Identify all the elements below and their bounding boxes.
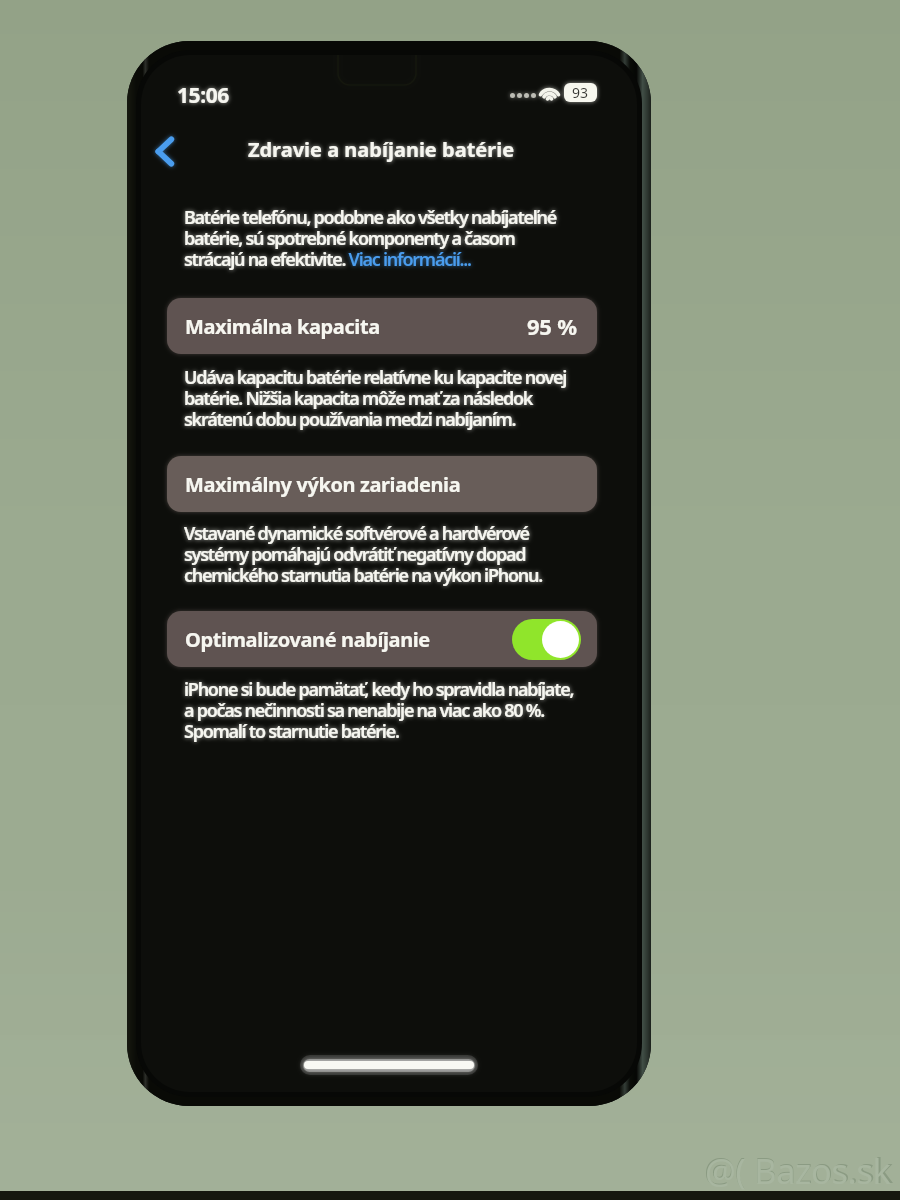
button[interactable]: Maximálna kapacita xyxy=(167,298,597,354)
staticText: 15:06 xyxy=(177,81,229,110)
staticText: iPhone si bude pamätať, kedy ho spravidl… xyxy=(184,677,574,744)
staticText: Batérie telefónu, podobne ako všetky nab… xyxy=(184,205,557,272)
staticText: 15:06 xyxy=(177,81,229,110)
button[interactable]: Back xyxy=(141,128,187,174)
staticText: Optimalizované nabíjanie xyxy=(185,626,430,653)
staticText: Maximálny výkon zariadenia xyxy=(185,471,461,498)
staticText: Udáva kapacitu batérie relatívne ku kapa… xyxy=(184,365,567,432)
staticText: Zdravie a nabíjanie batérie xyxy=(141,136,629,163)
button[interactable]: Optimalizované nabíjanie xyxy=(167,611,597,667)
staticText: Batérie telefónu, podobne ako všetky nab… xyxy=(184,205,557,272)
button[interactable]: Maximálna kapacita xyxy=(167,298,597,354)
staticText: Vstavané dynamické softvérové a hardvéro… xyxy=(184,521,542,588)
button[interactable]: Back xyxy=(141,128,187,174)
staticText: Maximálna kapacita xyxy=(185,313,380,340)
staticText: 95 % xyxy=(527,311,577,341)
staticText: 95 % xyxy=(527,311,577,341)
staticText: Zdravie a nabíjanie batérie xyxy=(141,136,629,163)
button[interactable]: Maximálny výkon zariadenia xyxy=(167,456,597,512)
staticText: 93 xyxy=(572,83,589,102)
staticText: Vstavané dynamické softvérové a hardvéro… xyxy=(184,521,542,588)
staticText: @( Bazos.sk xyxy=(704,1146,893,1194)
staticText: @( Bazos.sk xyxy=(705,1147,891,1194)
staticText: 93 xyxy=(572,83,589,102)
staticText: Optimalizované nabíjanie xyxy=(185,626,430,653)
button[interactable]: Maximálny výkon zariadenia xyxy=(167,456,597,512)
staticText: Maximálny výkon zariadenia xyxy=(185,471,461,498)
staticText: iPhone si bude pamätať, kedy ho spravidl… xyxy=(184,677,574,744)
button[interactable]: Optimalizované nabíjanie xyxy=(167,611,597,667)
staticText: Maximálna kapacita xyxy=(185,313,380,340)
staticText: Udáva kapacitu batérie relatívne ku kapa… xyxy=(184,365,567,432)
